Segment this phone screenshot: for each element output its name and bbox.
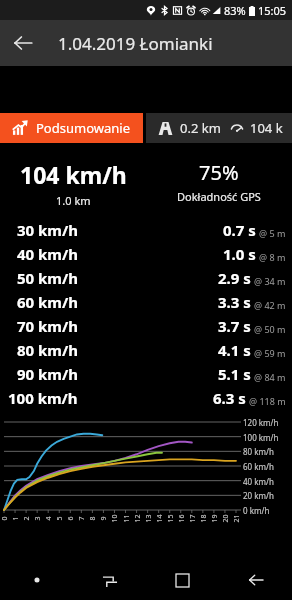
staticText: 16	[176, 513, 186, 522]
button[interactable]: 60 km/h	[0, 290, 292, 314]
staticText: 60 km/h	[17, 292, 78, 312]
staticText: 2	[21, 515, 31, 520]
staticText: @ 84 m	[254, 371, 286, 383]
staticText: @ 50 m	[254, 323, 286, 335]
button[interactable]: 0.2 km	[146, 113, 292, 143]
staticText: 9	[98, 515, 108, 520]
staticText: 19	[209, 513, 219, 522]
button[interactable]: Podsumowanie	[0, 113, 143, 143]
button[interactable]: Back	[6, 26, 40, 60]
button[interactable]: 100 km/h	[0, 386, 292, 410]
staticText: 8	[87, 515, 97, 520]
button[interactable]: Switch apps	[73, 560, 146, 600]
staticText: 3	[32, 515, 42, 520]
staticText: 30 km/h	[17, 220, 78, 240]
staticText: 0 km/h	[243, 505, 270, 516]
staticText: @ 59 m	[254, 347, 286, 359]
button[interactable]: 90 km/h	[0, 362, 292, 386]
staticText: 12	[132, 513, 142, 522]
staticText: 6.3 s	[213, 388, 246, 408]
staticText: 104 k	[250, 119, 283, 137]
staticText: 80 km/h	[17, 340, 78, 360]
staticText: 1	[10, 515, 20, 520]
staticText: @ 5 m	[259, 227, 286, 239]
staticText: 10	[109, 513, 119, 522]
staticText: 3.3 s	[218, 292, 251, 312]
staticText: 5.1 s	[218, 364, 251, 384]
staticText: 5	[54, 515, 64, 520]
button[interactable]: 70 km/h	[0, 314, 292, 338]
staticText: 40 km/h	[243, 476, 274, 487]
staticText: 14	[154, 513, 164, 522]
staticText: 21	[231, 513, 241, 522]
staticText: 15	[165, 513, 175, 522]
staticText: 11	[121, 513, 131, 522]
staticText: 18	[198, 513, 208, 522]
button[interactable]: 80 km/h	[0, 338, 292, 362]
staticText: 13	[143, 513, 153, 522]
button[interactable]: 30 km/h	[0, 218, 292, 242]
staticText: 1.0 s	[223, 244, 256, 264]
staticText: @ 34 m	[254, 275, 286, 287]
staticText: 2.9 s	[218, 268, 251, 288]
staticText: 90 km/h	[17, 364, 78, 384]
button[interactable]: 50 km/h	[0, 266, 292, 290]
staticText: @ 42 m	[254, 299, 286, 311]
staticText: 17	[187, 513, 197, 522]
staticText: 0.2 km	[180, 119, 221, 137]
staticText: 20 km/h	[243, 490, 274, 501]
staticText: 80 km/h	[243, 446, 274, 457]
staticText: 3.7 s	[218, 316, 251, 336]
staticText: 0.7 s	[223, 220, 256, 240]
button[interactable]: 40 km/h	[0, 242, 292, 266]
staticText: 20	[220, 513, 230, 522]
staticText: 1.0 km	[56, 193, 91, 208]
staticText: @ 118 m	[249, 395, 286, 407]
staticText: 100 km/h	[243, 432, 279, 443]
staticText: 50 km/h	[17, 268, 78, 288]
staticText: 70 km/h	[17, 316, 78, 336]
staticText: 15:05	[258, 3, 287, 18]
staticText: 0	[0, 515, 9, 520]
staticText: 4	[43, 515, 53, 520]
staticText: 104 km/h	[20, 159, 127, 190]
button[interactable]: Recent apps	[146, 560, 219, 600]
button[interactable]: Assistant	[0, 560, 73, 600]
staticText: Podsumowanie	[36, 119, 130, 137]
staticText: 100 km/h	[8, 388, 78, 408]
staticText: 40 km/h	[17, 244, 78, 264]
staticText: 83%	[224, 3, 246, 18]
button[interactable]: Back	[219, 560, 292, 600]
staticText: 1.04.2019 Łomianki	[58, 32, 213, 55]
staticText: 4.1 s	[218, 340, 251, 360]
staticText: 75%	[199, 159, 239, 186]
staticText: 7	[76, 515, 86, 520]
staticText: 120 km/h	[243, 417, 279, 428]
staticText: 6	[65, 515, 75, 520]
staticText: @ 8 m	[259, 251, 286, 263]
staticText: 60 km/h	[243, 461, 274, 472]
staticText: Dokładność GPS	[177, 189, 261, 204]
